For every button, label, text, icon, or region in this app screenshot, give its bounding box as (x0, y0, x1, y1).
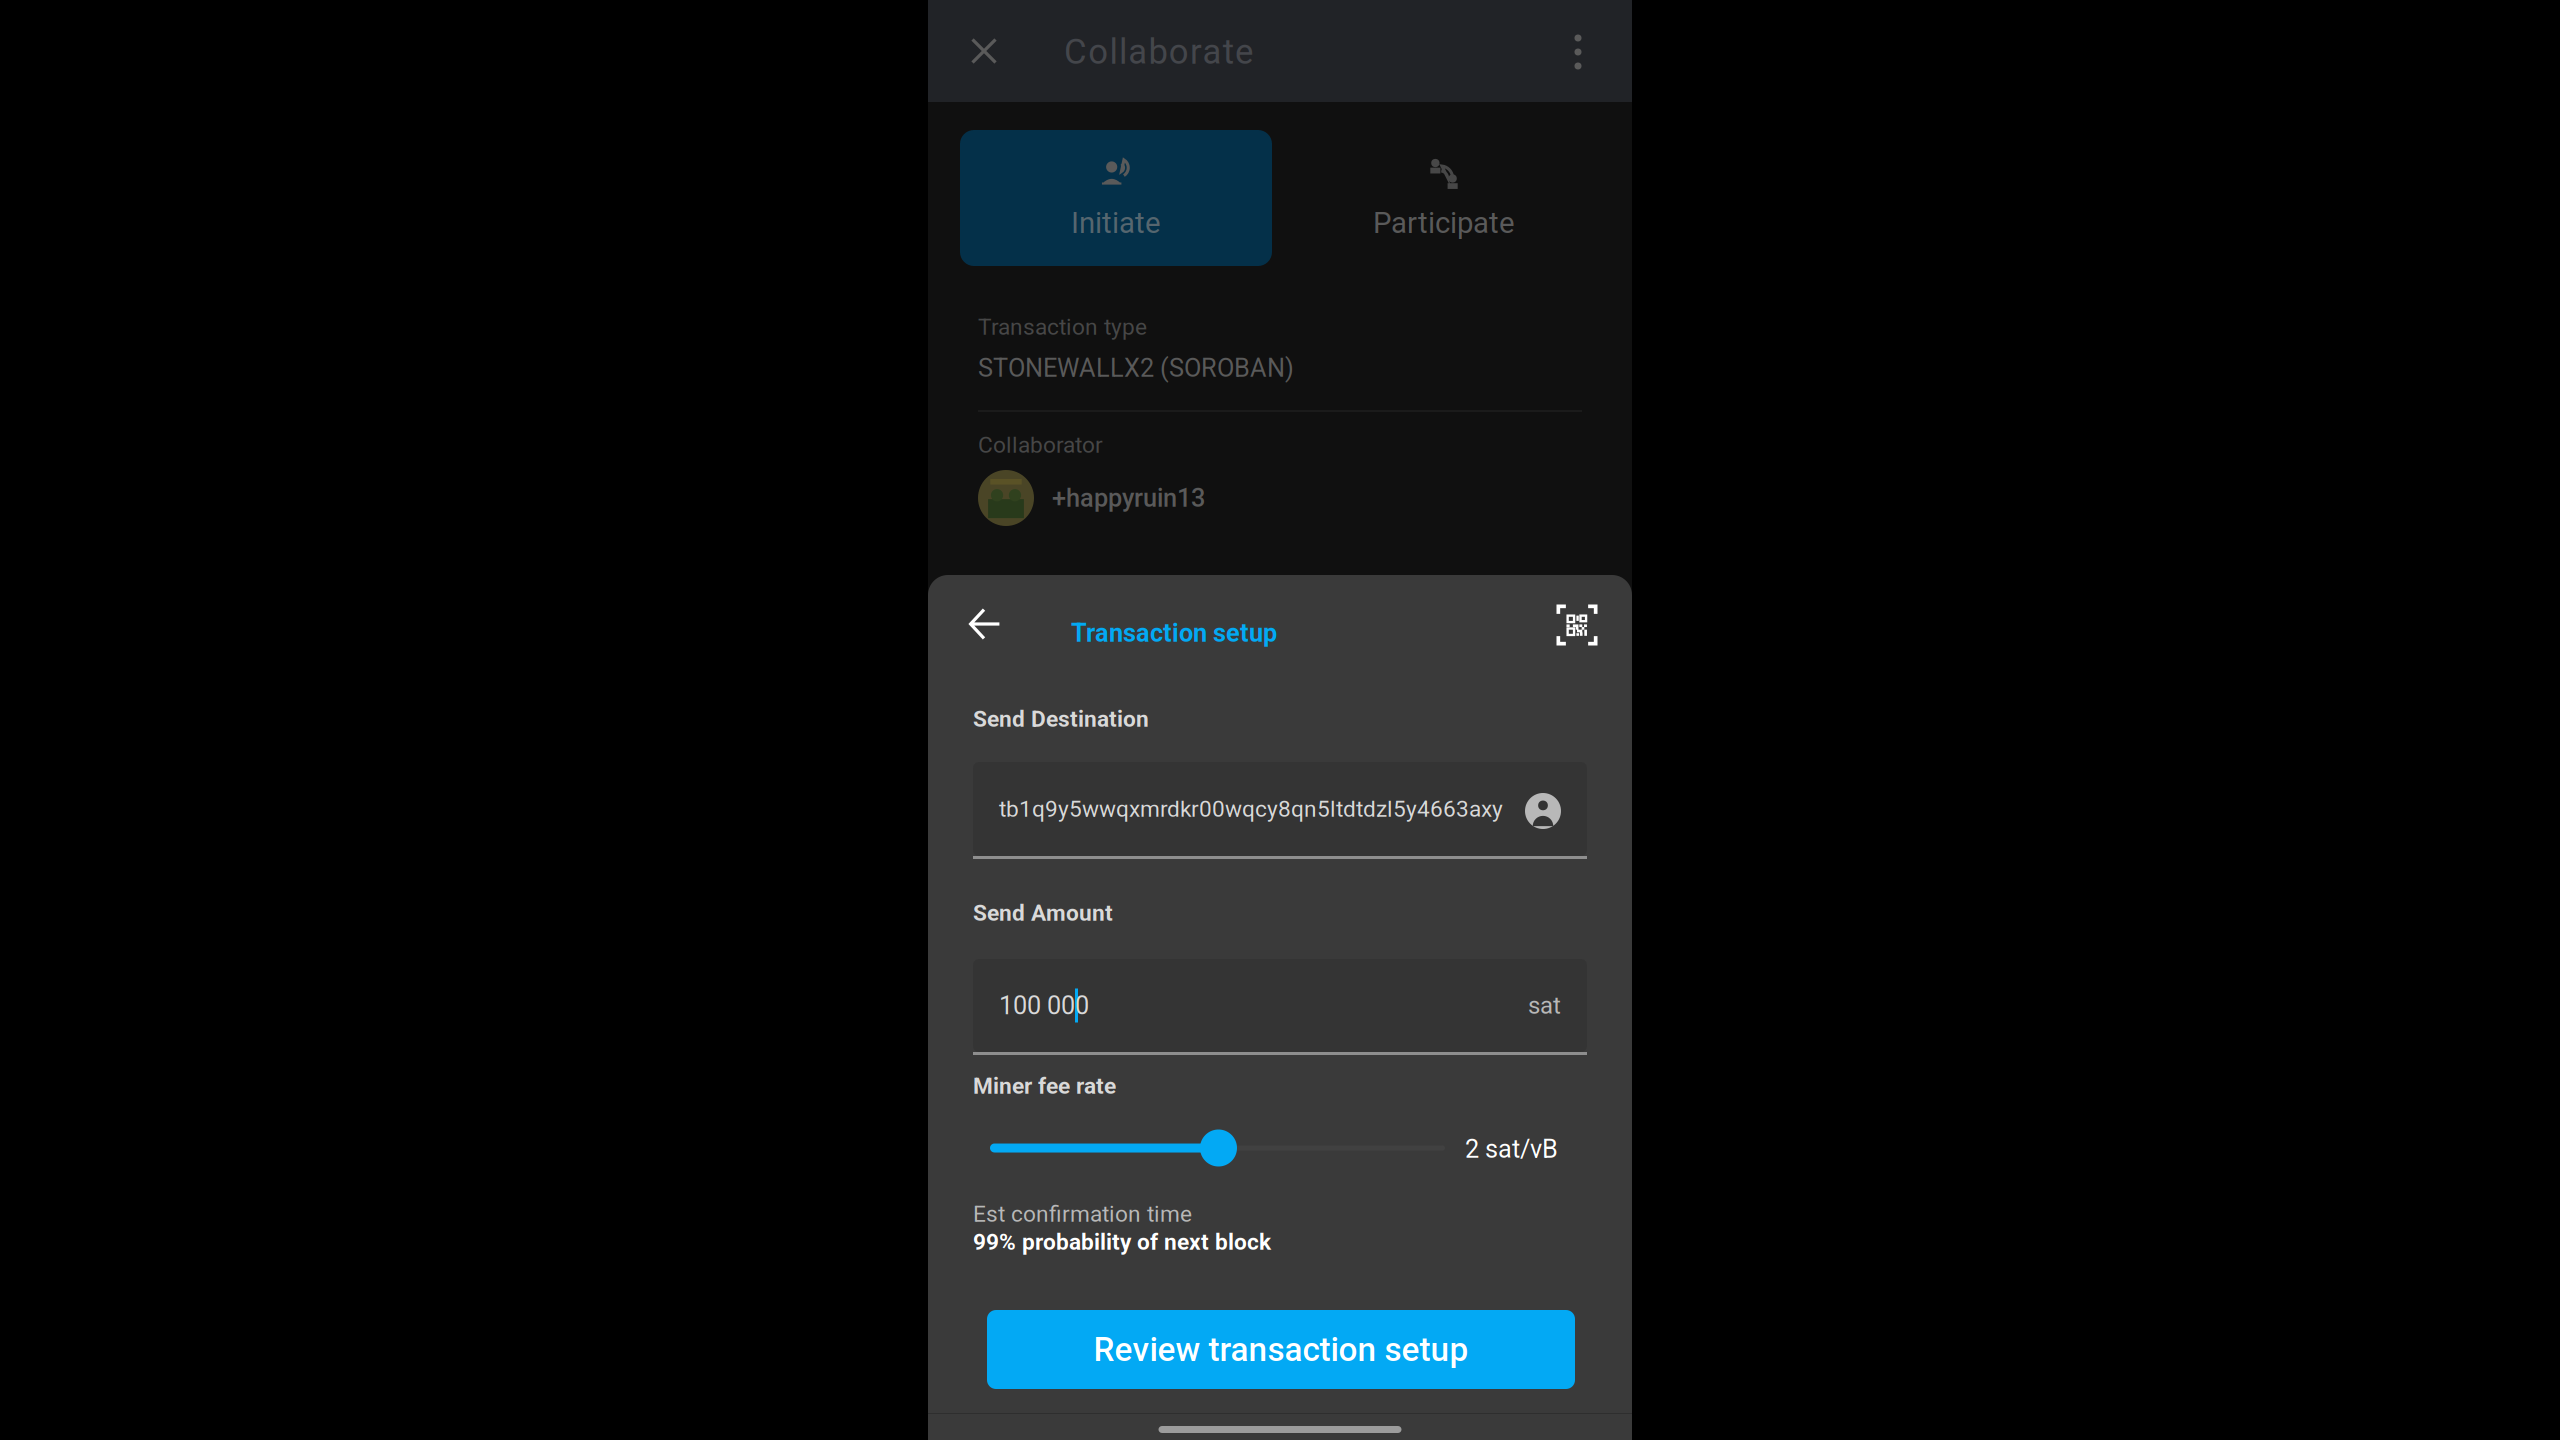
staticText: Collaborator (978, 432, 1103, 458)
button[interactable]: tb1q9y5wwqxmrdkr00wqcy8qn5ltdtdzl5y4663a… (973, 762, 1587, 856)
staticText: tb1q9y5wwqxmrdkr00wqcy8qn5ltdtdzl5y4663a… (999, 796, 1503, 822)
staticText: Initiate (1071, 206, 1161, 240)
button[interactable]: Review transaction setup (987, 1310, 1575, 1389)
button[interactable]: Scan QR code (1537, 593, 1617, 657)
button[interactable]: 100 00 (973, 959, 1587, 1052)
staticText: Participate (1373, 206, 1515, 240)
button[interactable]: Back (949, 592, 1021, 656)
staticText: Transaction setup (1071, 618, 1277, 648)
staticText: Send Amount (973, 900, 1113, 926)
staticText: Review transaction setup (1093, 1330, 1468, 1369)
button[interactable]: Initiate (960, 130, 1272, 266)
staticText: Collaborate (1064, 32, 1253, 72)
staticText: 2 sat/vB (1465, 1134, 1558, 1164)
button[interactable]: Participate (1288, 130, 1600, 266)
staticText: 0 (1075, 991, 1089, 1020)
staticText: Transaction type (978, 314, 1147, 340)
staticText: 99% probability of next block (973, 1229, 1271, 1255)
staticText: Est confirmation time (973, 1201, 1192, 1227)
staticText: STONEWALLX2 (SOROBAN) (978, 353, 1294, 383)
button[interactable]: Close (956, 23, 1012, 79)
button[interactable]: More options (1560, 32, 1596, 72)
staticText: Miner fee rate (973, 1073, 1116, 1099)
staticText: Send Destination (973, 706, 1149, 732)
staticText: +happyruin13 (1052, 483, 1205, 513)
staticText: 100 00 (999, 991, 1075, 1020)
staticText: sat (1528, 991, 1561, 1019)
